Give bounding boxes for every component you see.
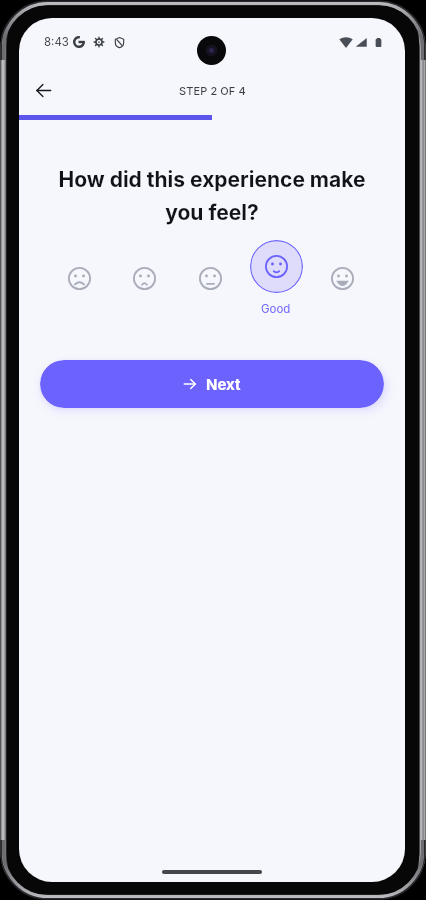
button[interactable]: Great (309, 267, 375, 290)
button[interactable]: Okay (177, 267, 243, 290)
button[interactable]: Next (40, 360, 384, 408)
staticText: 8:43 (44, 35, 69, 49)
button[interactable]: Good (243, 240, 309, 316)
button[interactable]: Back (24, 71, 62, 109)
staticText: How did this experience make you feel? (39, 167, 385, 225)
staticText: Good (261, 302, 291, 316)
staticText: STEP 2 OF 4 (179, 84, 246, 97)
button[interactable]: Very bad (47, 267, 112, 290)
staticText: Next (206, 375, 241, 393)
button[interactable]: Bad (112, 267, 177, 290)
